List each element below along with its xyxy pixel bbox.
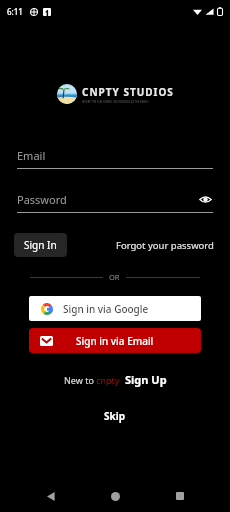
staticText: Sign Up — [125, 372, 167, 387]
staticText: Sign In — [24, 238, 57, 252]
button[interactable]: Sign in via Email — [29, 328, 201, 353]
staticText: New to cnpty — [64, 374, 120, 386]
button[interactable]: Sign in via Google — [29, 296, 201, 321]
button[interactable]: Recent apps — [166, 482, 194, 510]
staticText: OR — [109, 272, 120, 282]
staticText: CNPTY STUDIOS — [82, 85, 174, 99]
staticText: Skip — [104, 409, 126, 423]
button[interactable]: Password — [17, 190, 213, 208]
button[interactable]: Sign In — [14, 233, 67, 257]
button[interactable]: Email — [17, 146, 213, 164]
button[interactable]: Show password — [197, 191, 213, 207]
staticText: WHERE THE SUN SHINES ON CREATIVES AT THE… — [82, 100, 149, 104]
staticText: Forgot your password — [116, 239, 214, 252]
staticText: Sign in via Email — [76, 334, 154, 348]
staticText: Password — [17, 192, 67, 207]
button[interactable]: Forgot your password — [114, 234, 216, 257]
staticText: Email — [17, 148, 46, 163]
button[interactable]: Sign Up — [125, 372, 167, 387]
staticText: Sign in via Google — [63, 302, 149, 316]
button[interactable]: Back — [37, 482, 65, 510]
button[interactable]: Skip — [94, 406, 136, 426]
button[interactable]: Home — [101, 482, 129, 510]
staticText: 6:11 — [7, 6, 23, 17]
